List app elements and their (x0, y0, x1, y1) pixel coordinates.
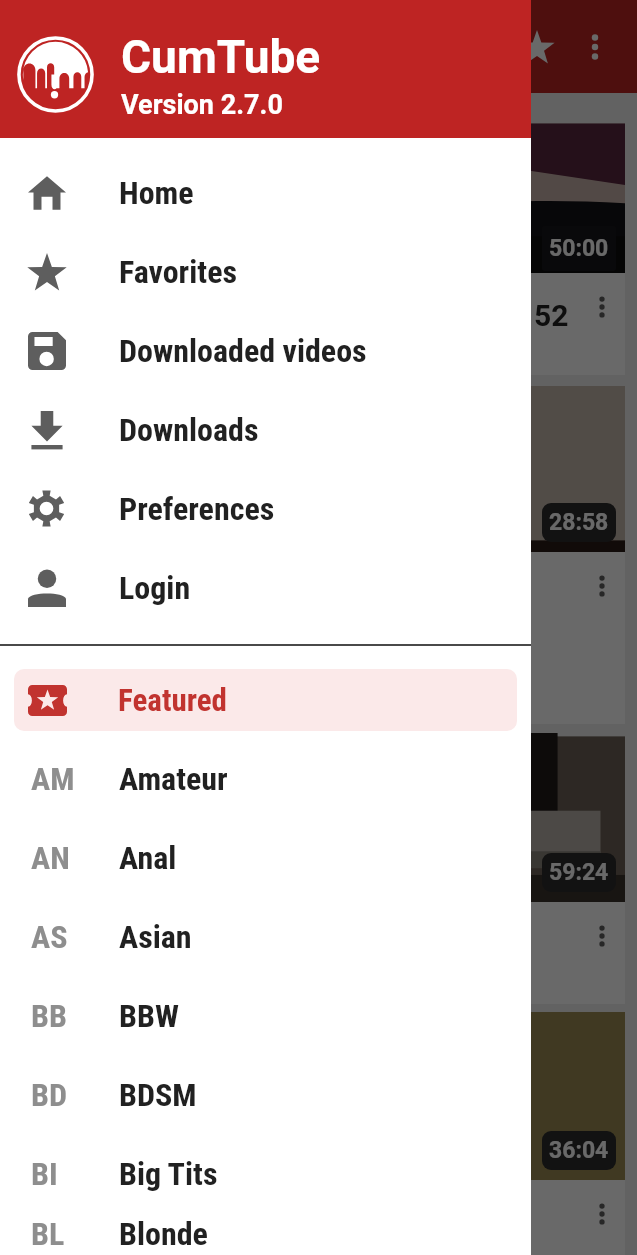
staticText: Big Tits (119, 1155, 218, 1193)
button[interactable]: Login (0, 548, 531, 627)
button[interactable]: More (580, 285, 624, 329)
staticText: AN (31, 839, 70, 877)
button[interactable]: Downloaded videos (0, 311, 531, 390)
staticText: Blonde (119, 1215, 208, 1253)
staticText: BDSM (119, 1076, 197, 1114)
staticText: BL (31, 1215, 65, 1253)
staticText: AM (31, 760, 75, 798)
staticText: 36:04 (549, 1137, 609, 1164)
button[interactable]: AM (0, 739, 531, 818)
button[interactable]: BL (0, 1213, 531, 1255)
staticText: Fun With Japans - Natural Big Boobs (26, 1205, 520, 1240)
button[interactable]: AS (0, 897, 531, 976)
staticText: Home (119, 174, 194, 212)
button[interactable]: BB (0, 976, 531, 1055)
staticText: Preferences (119, 490, 275, 528)
staticText: 59:24 (549, 859, 609, 886)
button[interactable]: More (580, 564, 624, 608)
button[interactable]: AN (0, 818, 531, 897)
button[interactable]: Downloads (0, 390, 531, 469)
button[interactable]: More options (566, 18, 624, 76)
staticText: BB (31, 997, 67, 1035)
button[interactable]: BI (0, 1134, 531, 1213)
staticText: Version 2.7.0 (121, 89, 283, 121)
staticText: Anal (119, 839, 177, 877)
staticText: Asian (119, 918, 192, 956)
staticText: Lovely blonde teen fucked by her stepbro… (26, 605, 570, 678)
staticText: Downloaded videos (119, 332, 367, 370)
staticText: 28:58 (549, 509, 609, 536)
staticText: BBW (119, 997, 179, 1035)
staticText: Downloads (119, 411, 259, 449)
button[interactable]: Preferences (0, 469, 531, 548)
staticText: Asian amateur (26, 927, 223, 962)
button[interactable]: BD (0, 1055, 531, 1134)
staticText: Cute Japanese Schoolgirl Rides Hard 52 (26, 298, 569, 333)
staticText: AS (31, 918, 68, 956)
button[interactable]: Favorites (508, 18, 566, 76)
staticText: BI (31, 1155, 58, 1193)
staticText: Login (119, 569, 191, 607)
staticText: Favorites (119, 253, 237, 291)
button[interactable]: Home (0, 153, 531, 232)
staticText: Amateur (119, 760, 228, 798)
button[interactable]: Favorites (0, 232, 531, 311)
button[interactable]: Featured (14, 669, 517, 731)
staticText: 50:00 (549, 235, 609, 262)
staticText: Featured (118, 682, 227, 718)
staticText: CumTube (121, 30, 321, 84)
staticText: BD (31, 1076, 68, 1114)
button[interactable]: More (580, 914, 624, 958)
button[interactable]: More (580, 1192, 624, 1236)
